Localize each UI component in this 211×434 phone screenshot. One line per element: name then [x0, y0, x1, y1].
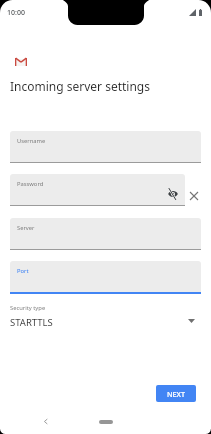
button[interactable]: Security type	[0, 300, 211, 332]
button[interactable]: Back	[37, 413, 53, 429]
staticText: Server	[17, 224, 35, 232]
button[interactable]: NEXT	[156, 385, 196, 402]
button[interactable]: Home	[99, 420, 113, 424]
staticText: Password	[17, 180, 44, 188]
staticText: Security type	[10, 304, 46, 312]
staticText: Incoming server settings	[10, 78, 150, 94]
button[interactable]: Show password	[165, 186, 181, 202]
staticText: Port	[17, 267, 29, 275]
button[interactable]: Clear	[186, 188, 201, 203]
staticText: STARTTLS	[10, 316, 53, 329]
staticText: 10:00	[7, 8, 25, 18]
button[interactable]: Username	[10, 131, 201, 162]
button[interactable]: Port	[10, 261, 201, 292]
button[interactable]: Password	[10, 174, 185, 205]
button[interactable]: Server	[10, 218, 201, 249]
staticText: NEXT	[167, 389, 186, 399]
staticText: Username	[17, 137, 46, 145]
